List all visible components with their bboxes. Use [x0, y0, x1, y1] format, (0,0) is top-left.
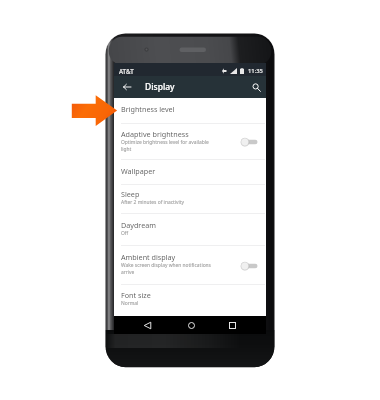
staticText: Wake screen display when notifications a… — [121, 262, 215, 275]
staticText: Off — [121, 230, 129, 237]
button[interactable]: Search — [246, 76, 266, 98]
button[interactable]: Home — [180, 316, 202, 334]
button[interactable]: Ambient display — [114, 246, 266, 285]
button[interactable]: Navigate up — [118, 76, 135, 98]
staticText: Ambient display — [121, 252, 176, 262]
staticText: Brightness level — [121, 104, 175, 114]
staticText: Font size — [121, 290, 151, 300]
staticText: Wallpaper — [121, 166, 156, 176]
staticText: Display — [145, 81, 175, 93]
staticText: Optimize brightness level for available … — [121, 139, 215, 152]
button[interactable]: Font size — [114, 285, 266, 316]
button[interactable]: Recent apps — [221, 316, 243, 334]
staticText: 11:35 — [248, 67, 263, 75]
staticText: Sleep — [121, 189, 140, 199]
button[interactable]: Wallpaper — [114, 160, 266, 185]
staticText: AT&T — [119, 67, 134, 75]
button[interactable]: Back — [136, 316, 158, 334]
staticText: Adaptive brightness — [121, 129, 189, 139]
staticText: Normal — [121, 300, 139, 307]
staticText: After 2 minutes of inactivity — [121, 199, 185, 206]
button[interactable]: Adaptive brightness — [114, 124, 266, 160]
button[interactable]: Brightness level — [114, 98, 266, 124]
button[interactable]: Daydream — [114, 214, 266, 246]
button[interactable]: Sleep — [114, 185, 266, 214]
staticText: Daydream — [121, 220, 156, 230]
